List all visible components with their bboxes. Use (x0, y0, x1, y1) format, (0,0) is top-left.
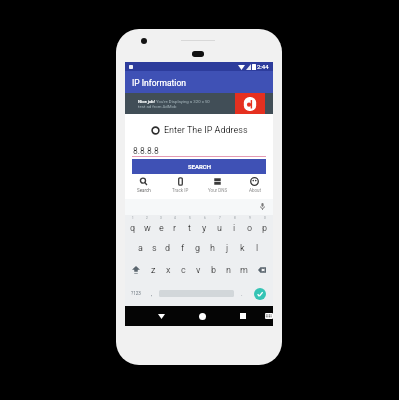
staticText: k (240, 243, 245, 254)
staticText: 2 (146, 216, 148, 220)
button[interactable]: 0 (257, 215, 272, 237)
staticText: n (226, 265, 231, 276)
other: Switch keyboard (265, 313, 273, 319)
staticText: s (152, 243, 157, 254)
staticText: m (240, 265, 248, 276)
button[interactable]: Back (155, 306, 167, 326)
button[interactable]: x (161, 259, 176, 281)
button[interactable]: f (175, 237, 190, 259)
staticText: f (181, 243, 185, 254)
staticText: a (138, 243, 143, 254)
staticText: ?123 (131, 291, 141, 296)
button[interactable]: Switch keyboard (262, 306, 275, 326)
button[interactable]: v (191, 259, 206, 281)
button[interactable]: l (250, 237, 265, 259)
staticText: t (188, 223, 191, 234)
staticText: 0 (264, 216, 266, 220)
staticText: e (159, 223, 164, 234)
button[interactable]: Backspace (251, 259, 272, 281)
button[interactable]: a (133, 237, 147, 259)
staticText: IP Information (132, 78, 186, 88)
staticText: Your DNS (208, 188, 228, 193)
staticText: u (217, 223, 222, 234)
staticText: v (196, 265, 201, 276)
button[interactable]: , (145, 281, 158, 306)
button[interactable]: m (236, 259, 251, 281)
staticText: d (165, 243, 171, 254)
staticText: 1 (132, 216, 134, 220)
button[interactable]: Shift (126, 259, 146, 281)
button[interactable]: j (220, 237, 235, 259)
other: Back (158, 314, 165, 319)
staticText: c (181, 265, 186, 276)
staticText: 5 (189, 216, 191, 220)
staticText: o (247, 223, 253, 234)
staticText: Enter The IP Address (164, 125, 248, 136)
staticText: i (233, 223, 236, 234)
staticText: . (241, 290, 243, 297)
button[interactable]: Your DNS (199, 175, 236, 195)
staticText: 2:44 (257, 63, 269, 70)
staticText: z (151, 265, 156, 276)
button[interactable]: SEARCH (132, 159, 266, 174)
button[interactable]: ?123 (126, 281, 145, 306)
staticText: Search (137, 188, 151, 193)
staticText: y (202, 223, 207, 234)
staticText: About (249, 188, 261, 193)
staticText: g (195, 243, 201, 254)
staticText: 7 (219, 216, 221, 220)
other: Backspace (258, 266, 266, 274)
button[interactable]: h (205, 237, 220, 259)
button[interactable]: Recents (237, 306, 248, 326)
button[interactable]: Enter (248, 281, 272, 306)
button[interactable]: Track IP (162, 175, 199, 195)
staticText: w (144, 223, 151, 234)
button[interactable]: 6 (197, 215, 212, 237)
other: Shift (132, 266, 140, 274)
button[interactable]: z (146, 259, 161, 281)
staticText: p (262, 223, 268, 234)
staticText: , (151, 290, 153, 297)
staticText: 6 (204, 216, 206, 220)
button[interactable]: c (176, 259, 191, 281)
button[interactable]: Search (125, 175, 162, 195)
staticText: q (130, 223, 136, 234)
button[interactable]: 1 (126, 215, 140, 237)
staticText: 3 (160, 216, 162, 220)
button[interactable]: 2 (140, 215, 154, 237)
button[interactable]: n (221, 259, 236, 281)
staticText: 8 (234, 216, 236, 220)
staticText: r (173, 223, 177, 234)
button[interactable]: d (161, 237, 175, 259)
button[interactable]: Home (196, 306, 209, 326)
button[interactable]: 7 (212, 215, 227, 237)
staticText: x (166, 265, 171, 276)
staticText: 9 (249, 216, 251, 220)
other: Voice input (260, 203, 265, 210)
staticText: l (256, 243, 259, 254)
button[interactable]: 9 (242, 215, 257, 237)
button[interactable]: b (206, 259, 221, 281)
staticText: h (210, 243, 215, 254)
button[interactable]: About (236, 175, 273, 195)
staticText: Track IP (172, 188, 189, 193)
staticText: 4 (174, 216, 176, 220)
other: Home (199, 313, 206, 320)
button[interactable]: g (190, 237, 205, 259)
button[interactable]: 3 (154, 215, 168, 237)
staticText: SEARCH (188, 163, 211, 170)
button[interactable]: 4 (168, 215, 182, 237)
button[interactable]: s (147, 237, 161, 259)
other: Enter (254, 288, 266, 300)
staticText: b (211, 265, 217, 276)
staticText: 8.8.8.8 (133, 146, 159, 156)
staticText: Nice job! You're Displaying a 320 x 50 t… (138, 99, 218, 109)
button[interactable]: k (235, 237, 250, 259)
staticText: j (226, 243, 229, 254)
button[interactable]: 8 (227, 215, 242, 237)
button[interactable]: 5 (182, 215, 197, 237)
